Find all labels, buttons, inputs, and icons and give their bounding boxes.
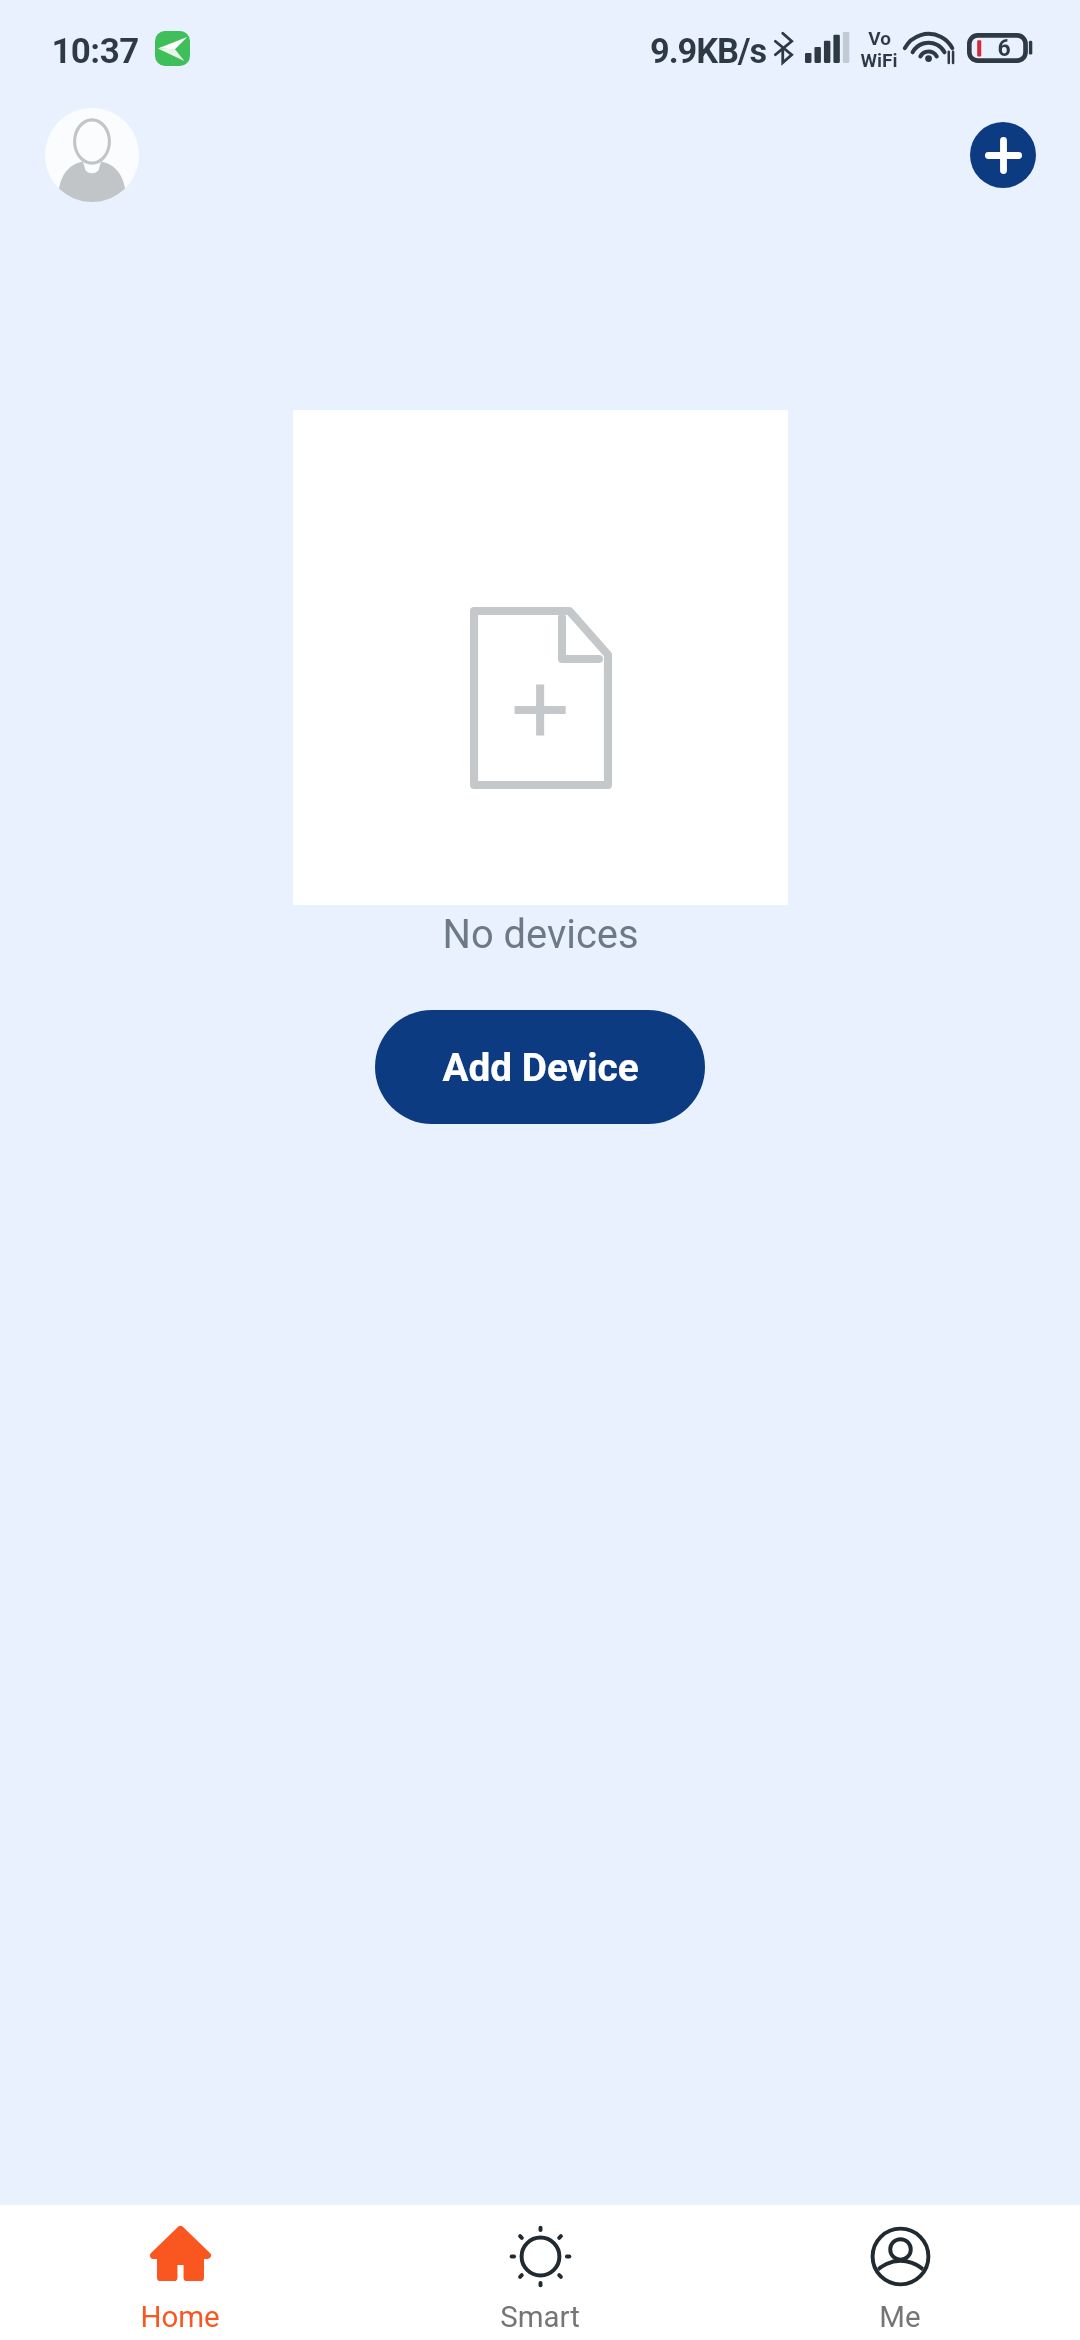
staticText: 6: [997, 35, 1011, 62]
staticText: WiFi: [860, 49, 898, 71]
button[interactable]: Smart: [360, 2205, 720, 2340]
staticText: Vo: [868, 27, 891, 49]
staticText: Home: [140, 2300, 220, 2334]
staticText: 9.9KB/s: [650, 31, 766, 71]
staticText: Add Device: [442, 1045, 639, 1090]
button[interactable]: Add Device: [375, 1010, 705, 1124]
button[interactable]: Add device: [970, 122, 1036, 188]
staticText: 10:37: [51, 31, 139, 72]
staticText: Smart: [500, 2300, 580, 2334]
staticText: Me: [879, 2300, 921, 2334]
staticText: No devices: [442, 911, 639, 958]
button[interactable]: Me: [720, 2205, 1080, 2340]
button[interactable]: Profile: [45, 108, 139, 202]
button[interactable]: Home: [0, 2205, 360, 2340]
